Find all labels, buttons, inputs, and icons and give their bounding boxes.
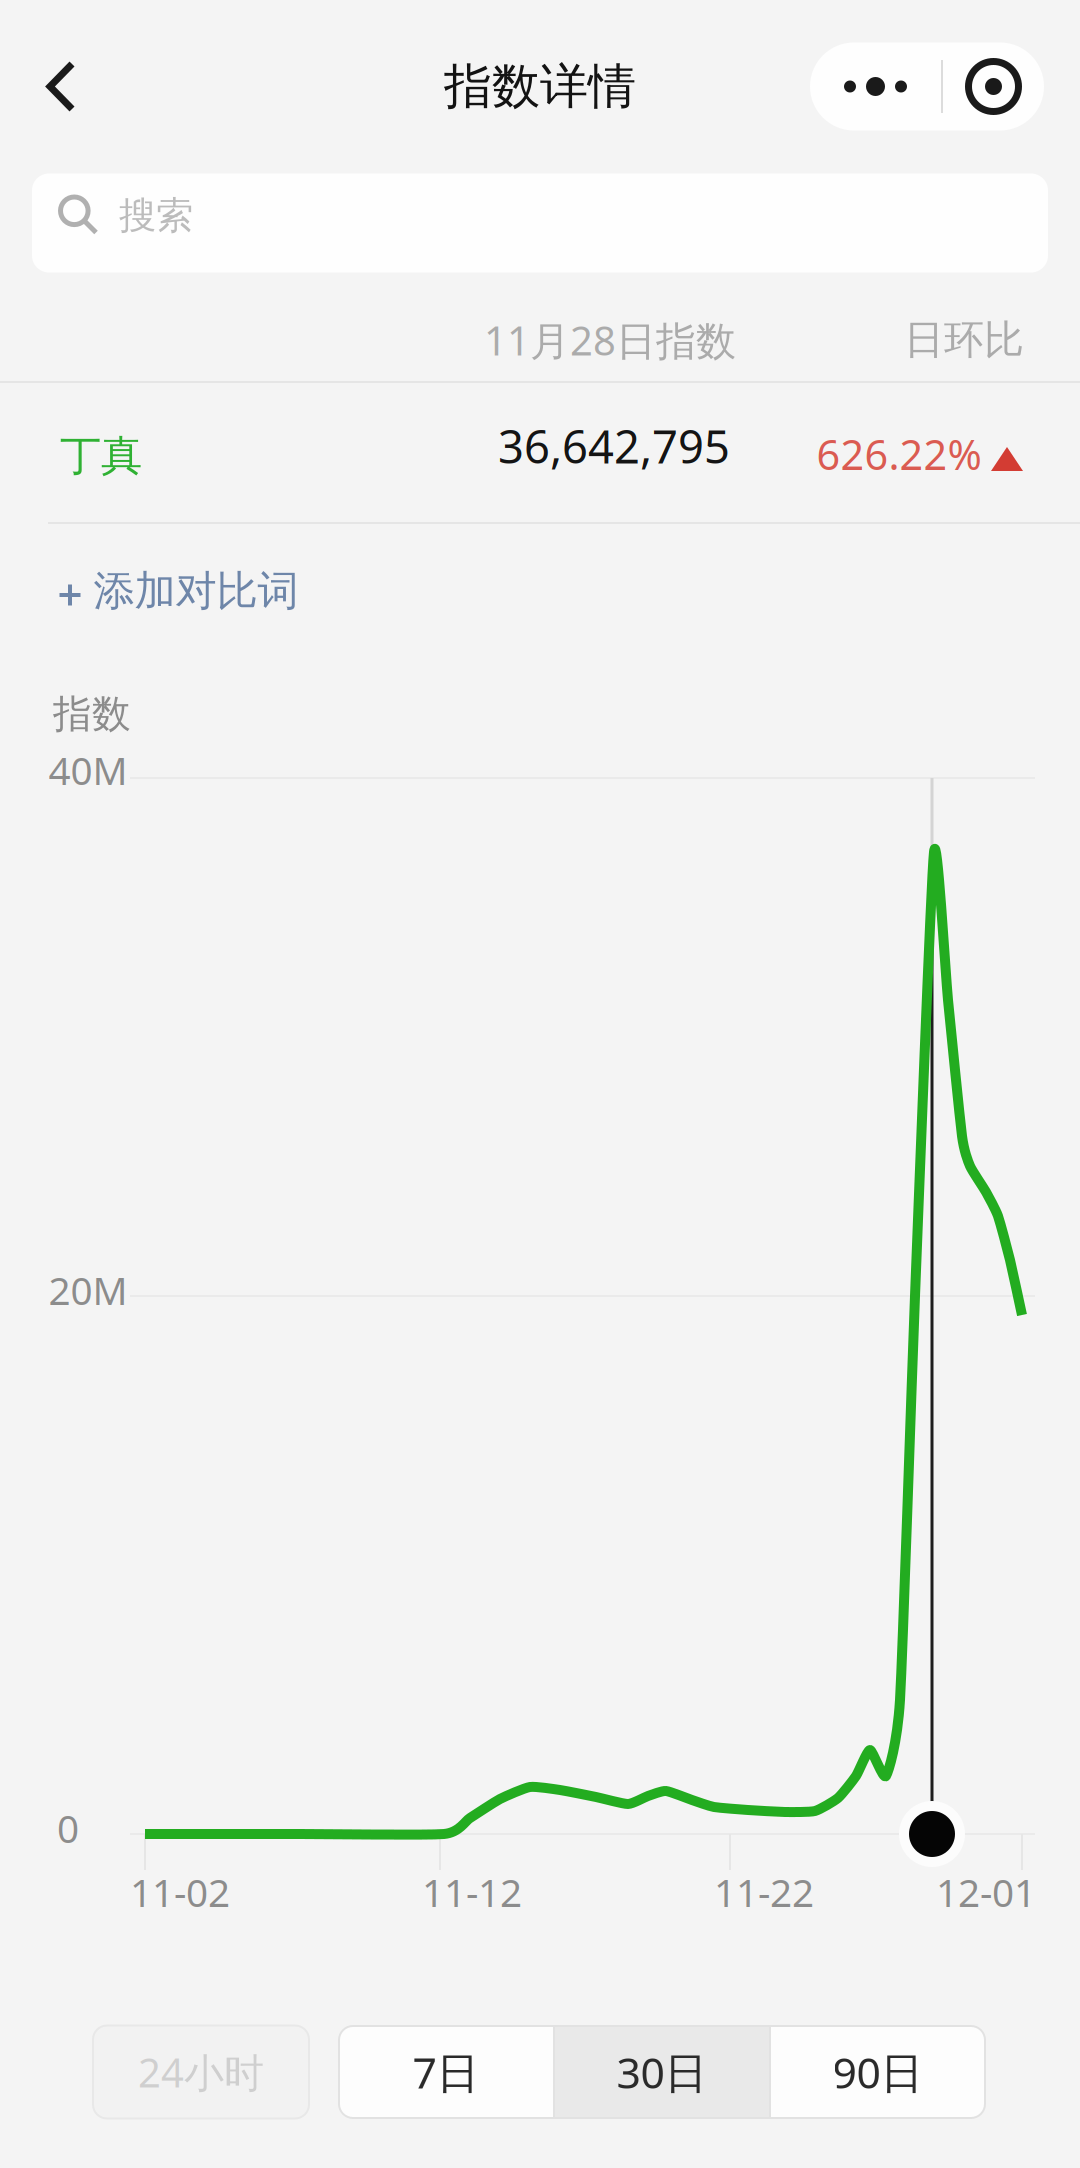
staticText: 90日 xyxy=(832,2044,923,2100)
button[interactable]: Close mini program xyxy=(943,42,1044,130)
button[interactable]: 搜索 xyxy=(0,173,1080,272)
button[interactable]: More options xyxy=(810,42,941,130)
staticText: 丁真 xyxy=(60,431,142,481)
staticText: 添加对比词 xyxy=(93,566,298,616)
staticText: 40M xyxy=(48,744,127,796)
staticText: 24小时 xyxy=(138,2045,264,2098)
staticText: 626.22% xyxy=(816,427,981,481)
staticText: 指数详情 xyxy=(444,57,636,116)
button[interactable]: 7日 xyxy=(339,2026,553,2118)
button[interactable]: 24小时 xyxy=(93,2025,309,2118)
button[interactable]: 添加对比词 xyxy=(0,524,1080,672)
staticText: 指数 xyxy=(53,690,131,738)
staticText: 11月28日指数 xyxy=(484,313,736,366)
button[interactable]: 30日 xyxy=(555,2026,769,2118)
staticText: 搜索 xyxy=(119,193,193,238)
staticText: 20M xyxy=(48,1264,127,1316)
staticText: 7日 xyxy=(412,2044,479,2100)
staticText: 11-02 xyxy=(130,1866,230,1918)
staticText: 30日 xyxy=(616,2044,707,2100)
button[interactable]: 90日 xyxy=(771,2026,985,2118)
staticText: 日环比 xyxy=(904,315,1024,364)
button[interactable]: Back xyxy=(0,36,112,137)
staticText: 12-01 xyxy=(936,1866,1036,1918)
staticText: 11-22 xyxy=(714,1866,814,1918)
staticText: 0 xyxy=(57,1802,79,1854)
staticText: 36,642,795 xyxy=(498,416,730,476)
staticText: 11-12 xyxy=(422,1866,522,1918)
